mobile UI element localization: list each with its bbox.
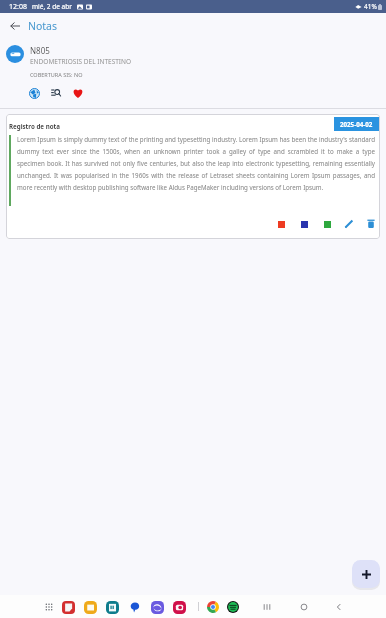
button[interactable]: Camera — [171, 599, 187, 615]
staticText: mié, 2 de abr — [32, 2, 72, 11]
button[interactable]: Green tag — [320, 217, 334, 231]
staticText: Registro de nota — [9, 122, 60, 130]
staticText: 12:08 — [9, 2, 27, 12]
staticText: Notas — [28, 19, 58, 33]
button[interactable]: Recent apps — [259, 599, 275, 615]
button[interactable]: Delete — [364, 217, 378, 231]
button[interactable]: Back — [6, 17, 24, 35]
staticText: Lorem Ipsum is simply dummy text of the … — [17, 135, 375, 192]
button[interactable]: Keep notes — [60, 599, 76, 615]
button[interactable]: Home — [296, 599, 312, 615]
button[interactable]: Globe — [26, 85, 42, 101]
staticText: 2025-04-02 — [340, 120, 373, 128]
staticText: 41% — [364, 2, 377, 11]
button[interactable]: Blue tag — [297, 217, 311, 231]
button[interactable]: Back — [331, 599, 347, 615]
button[interactable]: Add note — [352, 560, 380, 588]
button[interactable]: Files — [82, 599, 98, 615]
button[interactable]: Assistant — [149, 599, 165, 615]
button[interactable]: All apps — [41, 599, 57, 615]
button[interactable]: Calendar — [104, 599, 120, 615]
staticText: ENDOMETRIOSIS DEL INTESTINO — [30, 57, 132, 66]
button[interactable]: Favorite — [70, 85, 86, 101]
button[interactable]: Messages — [127, 599, 143, 615]
button[interactable]: Spotify — [225, 599, 241, 615]
button[interactable]: Chrome — [205, 599, 221, 615]
staticText: COBERTURA SIS: NO — [30, 71, 83, 78]
staticText: N805 — [30, 45, 50, 56]
button[interactable]: Red tag — [274, 217, 288, 231]
button[interactable]: Search records — [48, 85, 64, 101]
button[interactable]: Edit — [342, 217, 356, 231]
button[interactable]: Registro de nota — [6, 114, 380, 239]
